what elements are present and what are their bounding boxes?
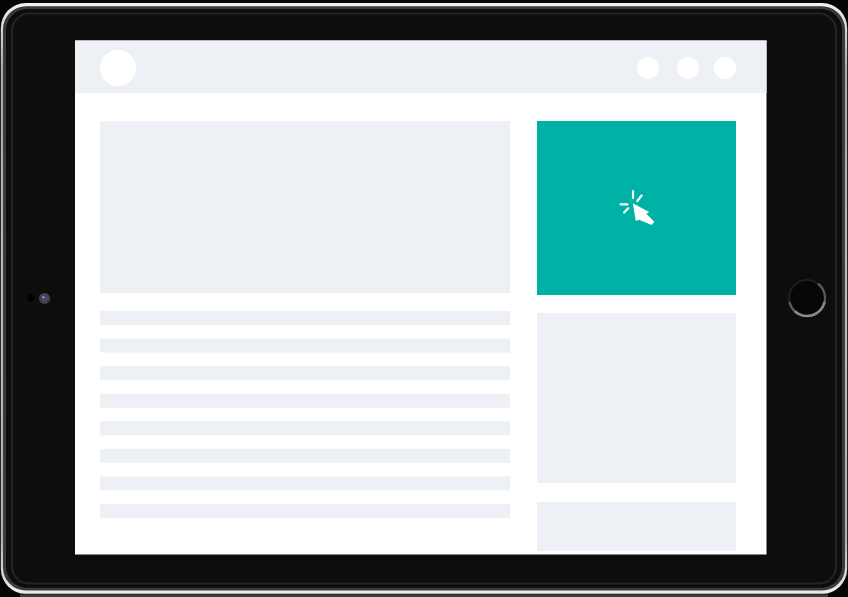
button[interactable]: [537, 121, 736, 295]
button[interactable]: [677, 57, 699, 79]
button[interactable]: [714, 57, 736, 79]
button[interactable]: [637, 57, 659, 79]
button[interactable]: [100, 50, 136, 86]
